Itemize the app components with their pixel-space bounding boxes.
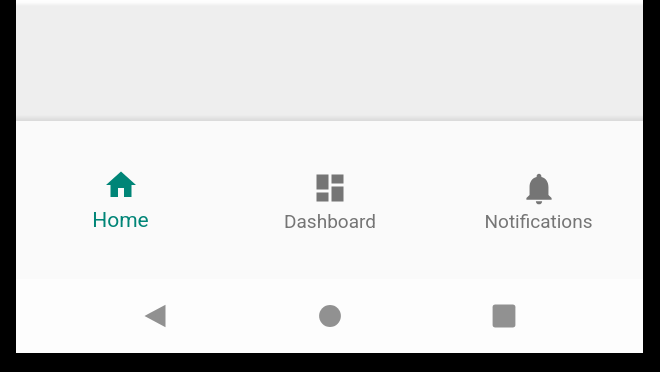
button[interactable]: Recent apps [474,279,534,353]
staticText: Notifications [484,210,593,232]
button[interactable]: Home [16,121,225,279]
button[interactable]: Dashboard [225,121,434,279]
button[interactable]: Back [125,279,185,353]
staticText: Home [92,208,149,233]
staticText: Dashboard [284,210,376,232]
button[interactable]: Notifications [434,121,643,279]
button[interactable]: Home [300,279,360,353]
